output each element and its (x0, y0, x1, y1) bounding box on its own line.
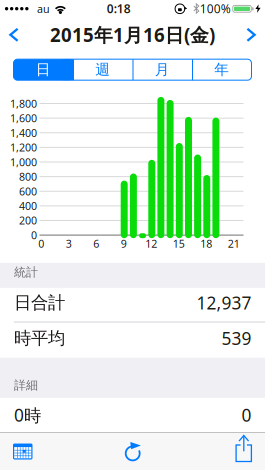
button[interactable]: 月 (132, 59, 192, 80)
staticText: 0 (38, 236, 44, 251)
staticText: 1,800 (10, 96, 37, 111)
button[interactable] (110, 433, 154, 469)
button[interactable] (0, 0, 265, 52)
staticText: 統計 (14, 265, 38, 280)
staticText: 9 (121, 236, 127, 251)
staticText: 時平均 (14, 328, 65, 349)
staticText: 日 (36, 61, 51, 79)
staticText: 週 (95, 61, 110, 79)
button[interactable] (0, 0, 265, 52)
staticText: 月 (155, 61, 170, 79)
staticText: 600 (19, 184, 37, 198)
staticText: 21 (228, 236, 240, 251)
staticText: 6 (93, 236, 99, 251)
button[interactable]: 年 (192, 59, 251, 80)
staticText: 1,400 (10, 126, 37, 140)
staticText: 1,200 (10, 140, 37, 154)
staticText: 0 (31, 228, 37, 242)
button[interactable]: 日 (13, 59, 73, 80)
staticText: 18 (200, 236, 212, 251)
staticText: 1,600 (10, 111, 37, 125)
staticText: 200 (19, 213, 37, 228)
staticText: 800 (19, 169, 37, 184)
staticText: 0:18 (107, 1, 131, 16)
staticText: au (37, 2, 50, 16)
staticText: 400 (19, 199, 37, 213)
staticText: 0時 (14, 403, 41, 426)
staticText: 100% (200, 1, 231, 16)
staticText: 詳細 (14, 378, 38, 392)
staticText: 539 (221, 327, 251, 350)
staticText: 2015年1月16日(金) (50, 22, 215, 47)
staticText: 日合計 (14, 292, 65, 313)
staticText: 0 (241, 403, 251, 426)
staticText: 12,937 (196, 291, 251, 314)
button[interactable] (221, 433, 265, 469)
staticText: 15 (173, 236, 185, 251)
staticText: 3 (66, 236, 72, 251)
staticText: 1,000 (10, 155, 37, 169)
staticText: 年 (214, 61, 229, 79)
button[interactable]: 週 (73, 59, 132, 80)
staticText: 12 (145, 236, 157, 251)
button[interactable] (2, 433, 46, 469)
